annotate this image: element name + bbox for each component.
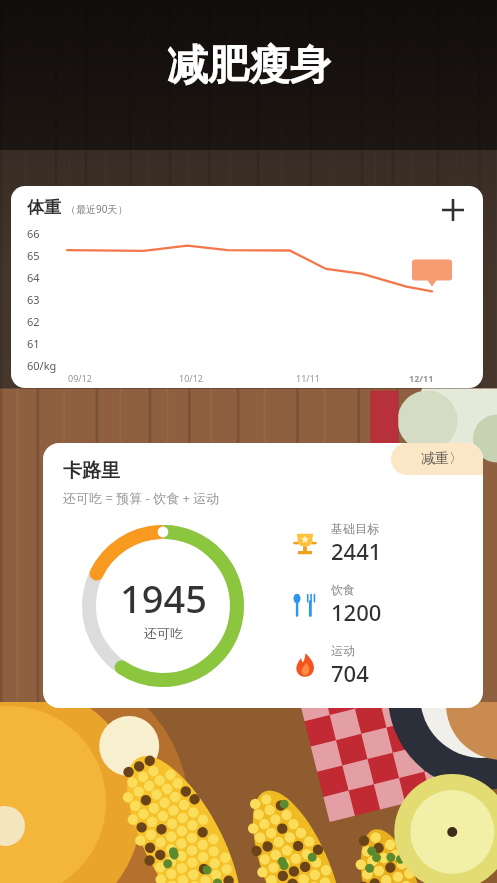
- staticText: 09/12: [68, 372, 92, 384]
- staticText: 基础目标: [331, 521, 379, 536]
- staticText: 减肥瘦身: [167, 40, 331, 92]
- button[interactable]: 饮食: [289, 582, 382, 627]
- button[interactable]: 体重: [11, 186, 483, 388]
- button[interactable]: 基础目标: [289, 521, 382, 566]
- staticText: 704: [331, 658, 369, 688]
- staticText: 卡路里: [63, 459, 120, 483]
- staticText: 运动: [331, 643, 355, 658]
- staticText: 1945: [120, 572, 207, 624]
- staticText: 饮食: [331, 582, 355, 597]
- staticText: 10/12: [179, 372, 203, 384]
- staticText: 61: [27, 336, 40, 351]
- button[interactable]: 减重〉: [391, 443, 483, 475]
- staticText: 63: [27, 292, 40, 307]
- staticText: 60/kg: [27, 358, 57, 373]
- button[interactable]: 运动: [289, 643, 369, 688]
- staticText: 12/11: [409, 372, 434, 384]
- staticText: （最近90天）: [66, 202, 128, 216]
- staticText: 65: [27, 248, 40, 263]
- staticText: 还可吃: [144, 625, 183, 641]
- staticText: 2441: [331, 536, 382, 566]
- staticText: 64: [27, 270, 40, 285]
- button[interactable]: Add weight entry: [433, 190, 473, 230]
- button[interactable]: 减重〉: [43, 443, 483, 708]
- staticText: 减重〉: [421, 450, 463, 468]
- staticText: 还可吃 = 预算 - 饮食 + 运动: [63, 489, 220, 507]
- staticText: 66: [27, 226, 40, 241]
- staticText: 1200: [331, 597, 382, 627]
- staticText: 11/11: [296, 372, 320, 384]
- staticText: 体重: [27, 197, 61, 218]
- staticText: 62: [27, 314, 40, 329]
